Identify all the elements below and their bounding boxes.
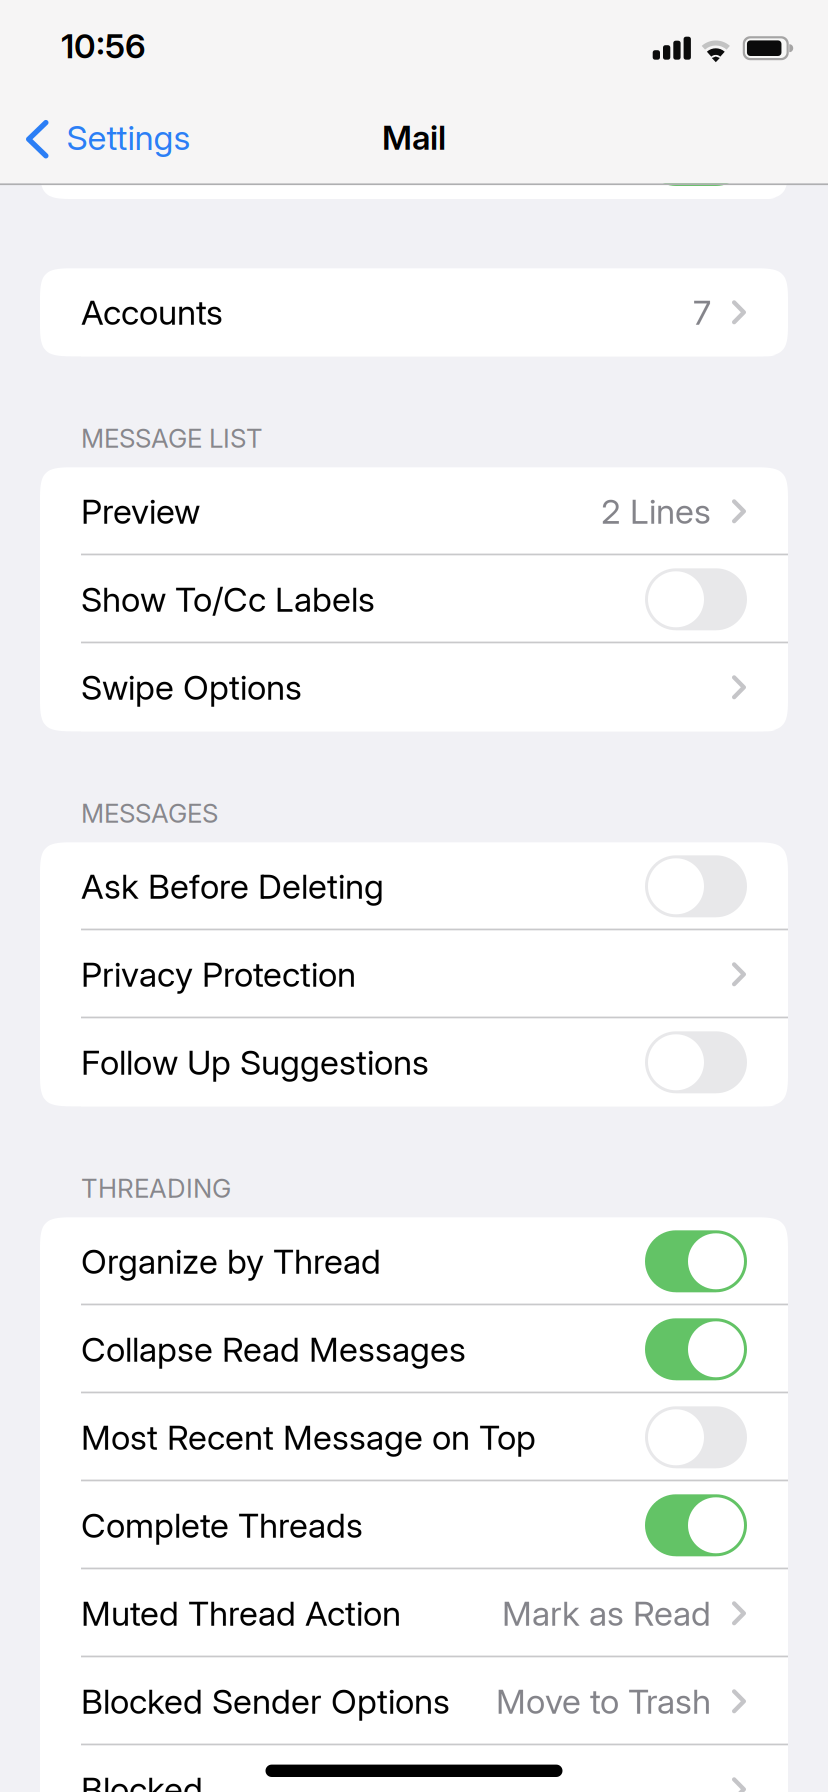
- button[interactable]: Follow Up Suggestions: [40, 1018, 788, 1106]
- staticText: Swipe Options: [81, 667, 302, 708]
- staticText: MESSAGE LIST: [81, 423, 263, 454]
- staticText: Mark as Read: [502, 1593, 711, 1634]
- button[interactable]: Collapse Read Messages: [40, 1305, 788, 1393]
- staticText: Ask Before Deleting: [81, 866, 384, 907]
- staticText: Privacy Protection: [81, 954, 356, 995]
- button[interactable]: Blocked Sender Options: [40, 1657, 788, 1745]
- staticText: Accounts: [81, 292, 223, 333]
- staticText: Load Remote Images: [81, 134, 404, 175]
- staticText: Organize by Thread: [81, 1241, 381, 1282]
- staticText: Show To/Cc Labels: [81, 579, 375, 620]
- button[interactable]: Muted Thread Action: [40, 1569, 788, 1657]
- button[interactable]: Complete Threads: [40, 1481, 788, 1569]
- staticText: Blocked: [81, 1769, 203, 1792]
- staticText: Move to Trash: [496, 1681, 711, 1722]
- staticText: 2 Lines: [601, 491, 711, 532]
- staticText: Preview: [81, 491, 200, 532]
- staticText: THREADING: [81, 1173, 231, 1204]
- button[interactable]: Blocked: [40, 1745, 788, 1792]
- button[interactable]: Privacy Protection: [40, 930, 788, 1018]
- button[interactable]: Accounts: [40, 268, 788, 356]
- staticText: Blocked Sender Options: [81, 1681, 450, 1722]
- staticText: Most Recent Message on Top: [81, 1417, 536, 1458]
- button[interactable]: Load Remote Images: [40, 111, 788, 199]
- staticText: MESSAGES: [81, 798, 218, 829]
- staticText: Complete Threads: [81, 1505, 363, 1546]
- button[interactable]: Settings: [0, 92, 260, 183]
- button[interactable]: Ask Before Deleting: [40, 842, 788, 930]
- staticText: 7: [693, 292, 711, 333]
- button[interactable]: Organize by Thread: [40, 1217, 788, 1305]
- button[interactable]: Swipe Options: [40, 643, 788, 731]
- staticText: Muted Thread Action: [81, 1593, 401, 1634]
- staticText: 10:56: [61, 26, 146, 66]
- staticText: Settings: [66, 117, 190, 158]
- staticText: Follow Up Suggestions: [81, 1042, 429, 1083]
- button[interactable]: Most Recent Message on Top: [40, 1393, 788, 1481]
- staticText: Mail: [382, 117, 446, 158]
- button[interactable]: Preview: [40, 467, 788, 555]
- button[interactable]: Show To/Cc Labels: [40, 555, 788, 643]
- staticText: Collapse Read Messages: [81, 1329, 466, 1370]
